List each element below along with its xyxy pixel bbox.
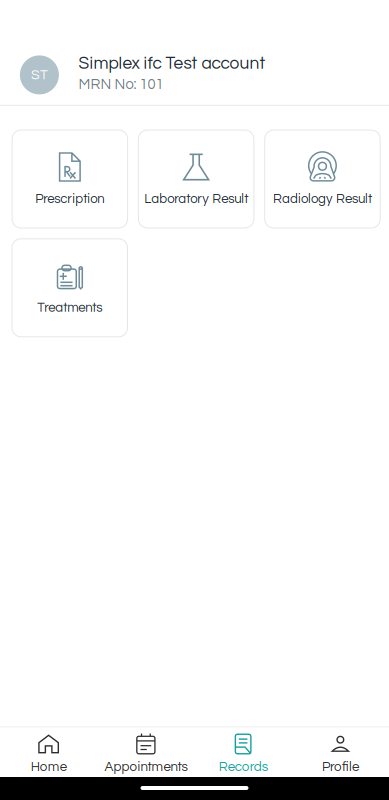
staticText: Radiology Result [273,192,372,206]
button[interactable]: Prescription [12,130,128,228]
staticText: Laboratory Result [144,192,248,206]
button[interactable]: Records [194,727,292,777]
staticText: Home [31,760,67,774]
staticText: Simplex ifc Test account [78,54,265,72]
staticText: Profile [322,760,359,774]
button[interactable]: Profile [292,727,389,777]
button[interactable]: Radiology Result [265,130,380,228]
staticText: MRN No: 101 [78,77,163,92]
button[interactable]: Home [0,727,97,777]
button[interactable]: Treatments [12,239,127,337]
button[interactable]: Laboratory Result [138,130,254,228]
staticText: Appointments [104,760,187,774]
staticText: ST [31,68,48,82]
staticText: Records [219,760,268,774]
button[interactable]: Appointments [97,727,194,777]
staticText: Treatments [37,301,102,315]
staticText: Prescription [35,192,104,206]
